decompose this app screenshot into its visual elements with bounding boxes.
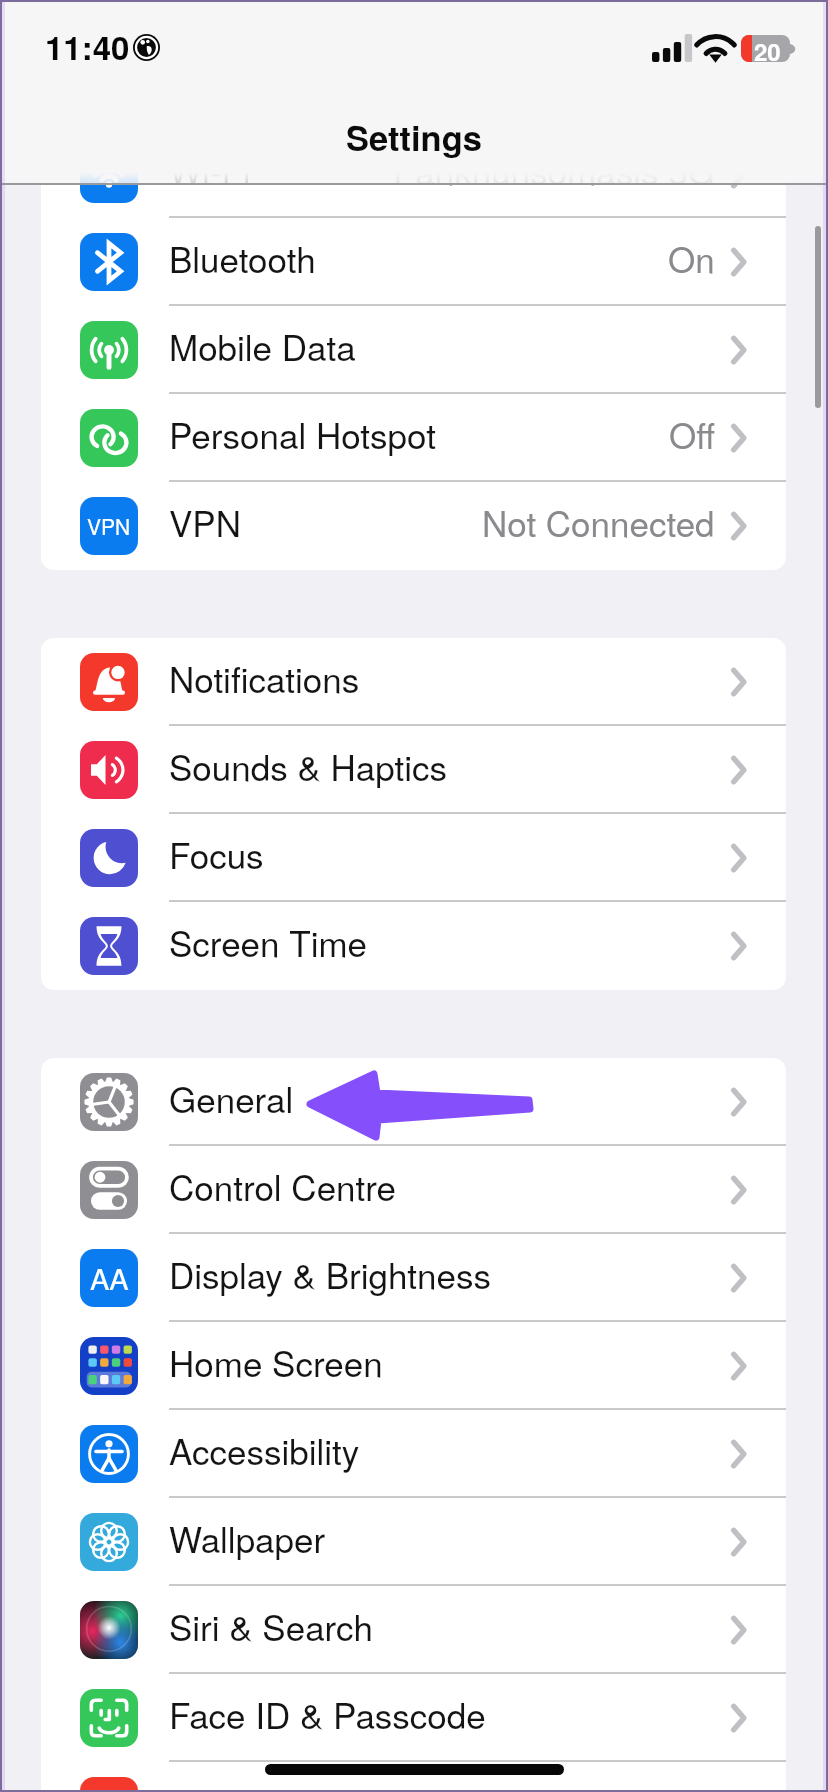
staticText: Wi-Fi <box>169 145 251 195</box>
staticText: Personal Hotspot <box>169 409 436 459</box>
staticText: Off <box>669 409 715 459</box>
button[interactable]: VPN <box>41 482 786 570</box>
staticText: Face ID & Passcode <box>169 1689 486 1739</box>
button[interactable]: Screen Time <box>41 902 786 990</box>
button[interactable]: Notifications <box>41 638 786 726</box>
staticText: Control Centre <box>169 1161 397 1211</box>
button[interactable]: Wallpaper <box>41 1498 786 1586</box>
button[interactable]: Face ID & Passcode <box>41 1674 786 1762</box>
staticText: General <box>169 1073 294 1123</box>
button[interactable]: Emergency SOS <box>41 1762 786 1792</box>
button[interactable]: Mobile Data <box>41 306 786 394</box>
button[interactable]: Accessibility <box>41 1410 786 1498</box>
button[interactable]: Wi-Fi <box>41 130 786 218</box>
staticText: Not Connected <box>482 497 715 547</box>
staticText: Wallpaper <box>169 1513 326 1563</box>
staticText: Emergency SOS <box>169 1777 430 1792</box>
staticText: On <box>668 233 715 283</box>
staticText: AA <box>90 1257 129 1299</box>
staticText: Siri & Search <box>169 1601 374 1651</box>
other: Cellular signal <box>652 34 692 62</box>
staticText: VPN <box>87 511 131 541</box>
staticText: Sounds & Haptics <box>169 741 448 791</box>
button[interactable]: Personal Hotspot <box>41 394 786 482</box>
button[interactable]: AA <box>41 1234 786 1322</box>
staticText: Mobile Data <box>169 321 356 371</box>
button[interactable]: Bluetooth <box>41 218 786 306</box>
button[interactable]: Focus <box>41 814 786 902</box>
staticText: Focus <box>169 829 264 879</box>
button[interactable]: Control Centre <box>41 1146 786 1234</box>
button[interactable]: Sounds & Haptics <box>41 726 786 814</box>
button[interactable]: General <box>41 1058 786 1146</box>
button[interactable]: Siri & Search <box>41 1586 786 1674</box>
button[interactable]: Home Screen <box>41 1322 786 1410</box>
staticText: VPN <box>169 497 241 547</box>
staticText: Notifications <box>169 653 360 703</box>
staticText: Accessibility <box>169 1425 360 1475</box>
staticText: 20 <box>754 35 781 61</box>
staticText: Home Screen <box>169 1337 383 1387</box>
staticText: Bluetooth <box>169 233 316 283</box>
staticText: Pankhurisomasis 5G <box>393 145 715 195</box>
staticText: Settings <box>346 112 482 161</box>
staticText: Display & Brightness <box>169 1249 492 1299</box>
other: Location indicator <box>133 34 160 61</box>
staticText: Screen Time <box>169 917 368 967</box>
other: Wi-Fi <box>699 35 732 62</box>
staticText: 11:40 <box>45 23 130 70</box>
